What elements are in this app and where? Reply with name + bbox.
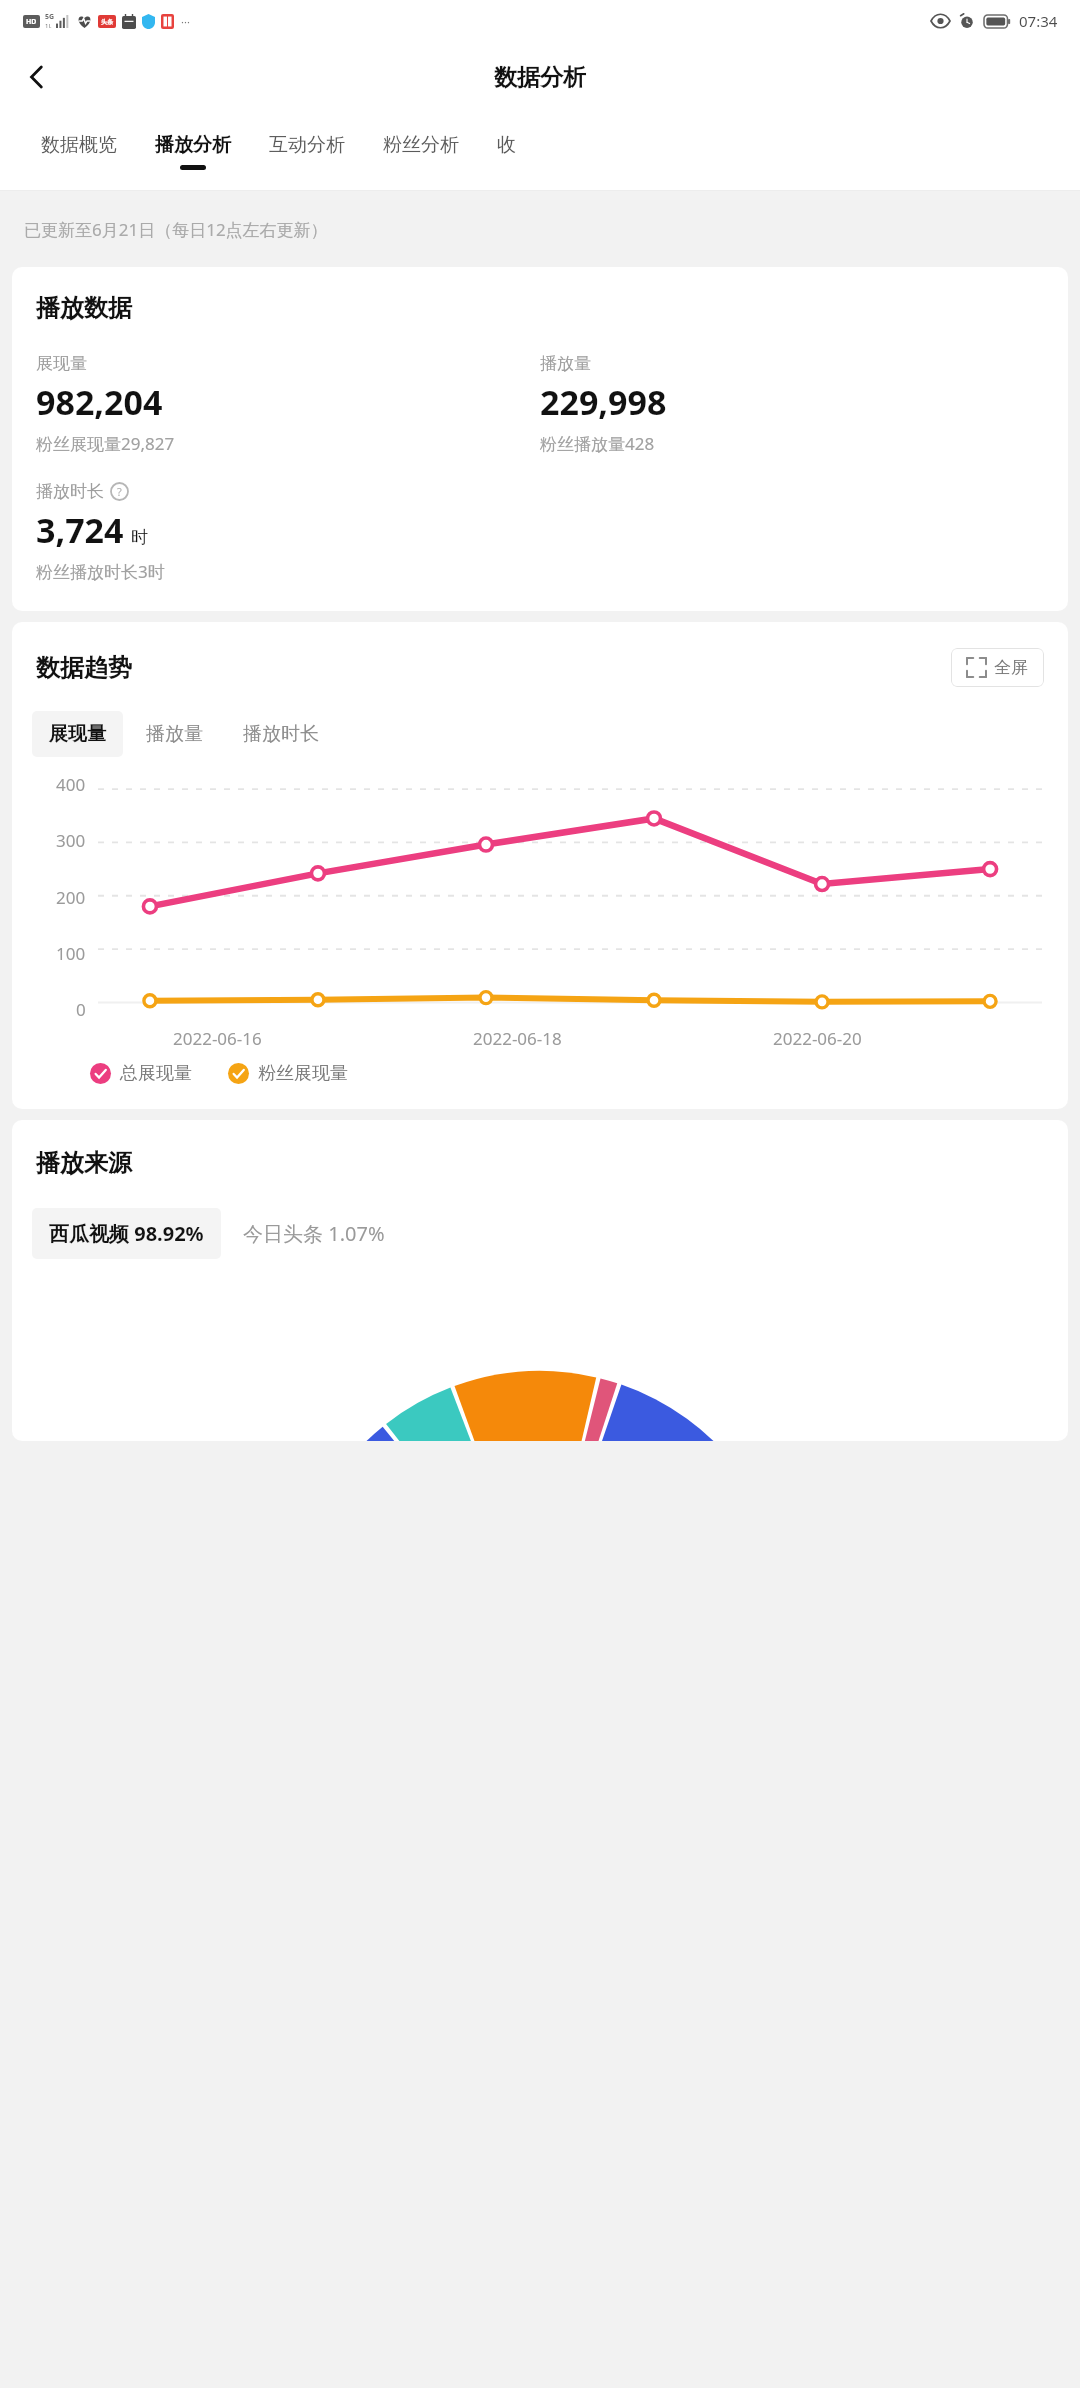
staticText: 西瓜视频 98.92% <box>49 1220 204 1247</box>
staticText: HD <box>26 17 37 27</box>
staticText: 播放来源 <box>36 1148 132 1178</box>
staticText: 982,204 <box>36 379 163 425</box>
staticText: 今日头条 1.07% <box>243 1220 385 1247</box>
button[interactable]: 全屏 <box>951 648 1044 687</box>
button[interactable]: 粉丝分析 <box>364 112 478 190</box>
staticText: 播放分析 <box>155 133 231 157</box>
button[interactable]: 播放量 <box>129 711 220 757</box>
staticText: 100 <box>56 942 86 965</box>
button[interactable]: 总展现量 <box>90 1062 192 1085</box>
staticText: 播放量 <box>540 353 591 374</box>
button[interactable]: 粉丝展现量 <box>228 1062 348 1085</box>
staticText: 0 <box>76 998 86 1021</box>
button[interactable]: 播放数据 <box>12 267 1068 611</box>
staticText: 时 <box>131 527 148 548</box>
button[interactable]: 互动分析 <box>250 112 364 190</box>
button[interactable]: 收 <box>478 112 535 190</box>
staticText: 粉丝分析 <box>383 133 459 157</box>
button[interactable]: 数据概览 <box>22 112 136 190</box>
staticText: 2022-06-18 <box>473 1027 562 1050</box>
staticText: 粉丝展现量29,827 <box>36 432 175 455</box>
staticText: 粉丝播放量428 <box>540 432 655 455</box>
staticText: 互动分析 <box>269 133 345 157</box>
staticText: 数据分析 <box>494 63 586 92</box>
staticText: 播放时长 <box>36 481 104 502</box>
button[interactable]: 播放时长 <box>226 711 336 757</box>
staticText: 展现量 <box>49 722 106 746</box>
staticText: 粉丝展现量 <box>258 1062 348 1085</box>
button[interactable]: 西瓜视频 98.92% <box>32 1208 221 1259</box>
staticText: 展现量 <box>36 353 87 374</box>
button[interactable]: 展现量 <box>32 711 123 757</box>
staticText: 3,724 <box>36 507 124 553</box>
button[interactable]: Help <box>110 482 129 501</box>
staticText: 2022-06-20 <box>773 1027 862 1050</box>
staticText: 300 <box>56 829 86 852</box>
staticText: 总展现量 <box>120 1062 192 1085</box>
button[interactable]: Back <box>10 50 64 104</box>
staticText: 400 <box>56 773 86 796</box>
staticText: 2022-06-16 <box>173 1027 262 1050</box>
staticText: 229,998 <box>540 379 667 425</box>
staticText: 07:34 <box>1019 11 1058 31</box>
staticText: ··· <box>181 14 190 29</box>
staticText: 已更新至6月21日（每日12点左右更新） <box>24 218 328 241</box>
staticText: ? <box>117 484 122 499</box>
staticText: 数据概览 <box>41 133 117 157</box>
staticText: 头条 <box>101 18 113 26</box>
staticText: 5G <box>45 12 55 22</box>
staticText: 粉丝播放时长3时 <box>36 560 165 583</box>
staticText: 200 <box>56 886 86 909</box>
staticText: 全屏 <box>994 657 1028 678</box>
staticText: 播放量 <box>146 722 203 746</box>
staticText: 1l. <box>45 22 52 30</box>
staticText: 收 <box>497 133 516 157</box>
button[interactable]: 播放分析 <box>136 112 250 190</box>
staticText: 数据趋势 <box>36 653 132 683</box>
staticText: 播放数据 <box>36 293 132 323</box>
staticText: 播放时长 <box>243 722 319 746</box>
button[interactable]: 今日头条 1.07% <box>233 1208 395 1259</box>
